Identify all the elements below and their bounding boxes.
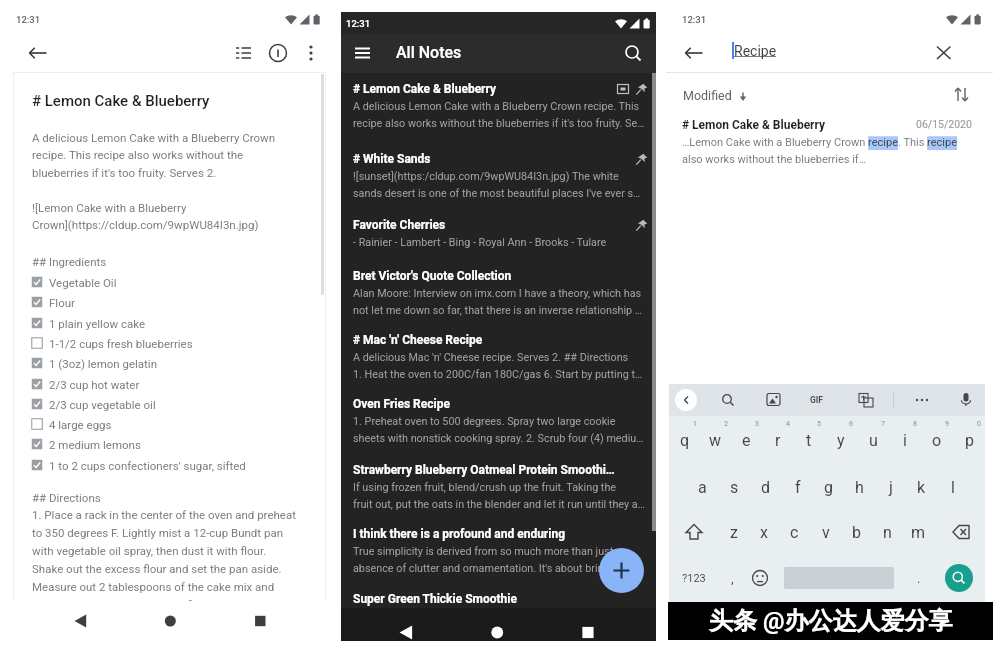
staticText: 5 [817,420,821,428]
button[interactable]: Search [719,391,737,409]
button[interactable]: Back [681,40,707,66]
staticText: 2/3 cup vegetable oil [49,398,156,411]
button[interactable]: Search [621,41,646,66]
button[interactable]: k [906,464,937,510]
button[interactable]: j [875,464,906,510]
button[interactable]: Checklist [232,40,258,66]
button[interactable]: n [872,510,903,554]
button[interactable]: 2 medium lemons [30,434,141,454]
button[interactable]: 4 large eggs [30,414,112,434]
staticText: h [855,478,864,497]
staticText: 2 medium lemons [49,438,141,451]
button[interactable]: More options [913,391,931,409]
button[interactable]: e [731,416,762,464]
button[interactable]: Oven Fries Recipe [341,397,656,445]
staticText: x [760,523,768,542]
button[interactable]: c [779,510,810,554]
button[interactable]: Super Green Thickie Smoothie [341,592,656,606]
button[interactable]: t [793,416,825,464]
button[interactable]: Voice input [957,391,975,409]
button[interactable]: a [686,464,718,510]
staticText: …Lemon Cake with a Blueberry Crown recip… [682,136,958,166]
button[interactable]: More options [298,40,324,66]
staticText: 12:31 [346,18,371,29]
button[interactable]: # Lemon Cake & Blueberry [341,82,656,130]
button[interactable]: 1 plain yellow cake [30,313,146,333]
button[interactable]: r [762,416,793,464]
button[interactable]: Bret Victor's Quote Collection [341,269,656,317]
staticText: ## Directions 1. Place a rack in the cen… [32,491,296,612]
button[interactable]: d [750,464,782,510]
button[interactable]: New note [599,548,644,593]
button[interactable]: Strawberry Blueberry Oatmeal Protein Smo… [341,463,656,511]
staticText: ## Ingredients [32,255,107,268]
button[interactable]: p [953,416,985,464]
staticText: i [903,431,907,450]
staticText: Favorite Cherries [353,218,446,232]
button[interactable]: Clear search [931,40,957,66]
button[interactable]: Backspace [934,510,985,554]
staticText: n [883,523,892,542]
button[interactable]: 2/3 cup hot water [30,374,140,394]
staticText: 7 [881,420,885,428]
button[interactable]: Modified [679,84,753,107]
staticText: Flour [49,296,75,309]
button[interactable]: I think there is a profound and enduring [341,527,656,575]
staticText: Bret Victor's Quote Collection [353,269,512,283]
button[interactable]: , [719,554,745,602]
button[interactable]: l [937,464,968,510]
button[interactable]: w [700,416,731,464]
staticText: 12:31 [16,14,41,25]
staticText: 2 [724,420,728,428]
button[interactable]: h [844,464,875,510]
button[interactable]: 2/3 cup vegetable oil [30,394,156,414]
staticText: 6 [849,420,853,428]
button[interactable]: Vegetable Oil [30,272,117,292]
button[interactable]: o [921,416,953,464]
button[interactable]: q [669,416,700,464]
button[interactable]: Menu [350,41,375,66]
button[interactable]: ?123 [669,554,719,602]
staticText: m [911,523,926,542]
button[interactable]: Shift [669,510,719,554]
button[interactable]: 1 (3oz) lemon gelatin [30,353,158,373]
staticText: Recipe [734,43,777,59]
staticText: 4 large eggs [49,418,112,431]
button[interactable]: Collapse toolbar [675,389,697,411]
button[interactable]: Info [265,40,291,66]
button[interactable]: Translate [857,391,875,409]
staticText: 06/15/2020 [916,118,972,130]
staticText: 4 [786,420,790,428]
button[interactable]: Stickers [765,391,783,409]
staticText: k [917,478,926,497]
button[interactable]: v [810,510,841,554]
staticText: 9 [945,420,949,428]
button[interactable]: b [841,510,872,554]
button[interactable]: y [825,416,857,464]
button[interactable]: 1 to 2 cups confectioners' sugar, sifted [30,455,246,475]
button[interactable]: s [718,464,750,510]
button[interactable]: m [903,510,934,554]
staticText: ![sunset](https:/cldup.com/9wpWU84I3n.jp… [353,170,641,200]
button[interactable]: f [782,464,813,510]
button[interactable]: Emoji [745,554,774,602]
button[interactable]: u [857,416,889,464]
button[interactable]: Flour [30,292,75,312]
button[interactable]: Favorite Cherries [341,218,656,249]
button[interactable]: i [889,416,921,464]
button[interactable]: # Mac 'n' Cheese Recipe [341,333,656,381]
staticText: # Lemon Cake & Blueberry [353,82,497,96]
button[interactable]: z [719,510,749,554]
staticText: g [824,478,833,497]
button[interactable]: Sort order [951,84,973,106]
button[interactable]: . [904,554,933,602]
staticText: p [965,431,974,450]
button[interactable]: # White Sands [341,152,656,200]
button[interactable]: x [749,510,779,554]
button[interactable]: Back [25,40,51,66]
button[interactable]: Search [945,564,973,592]
button[interactable]: g [813,464,844,510]
button[interactable]: 1-1/2 cups fresh blueberries [30,333,193,353]
button[interactable]: # Lemon Cake & Blueberry [666,118,993,166]
